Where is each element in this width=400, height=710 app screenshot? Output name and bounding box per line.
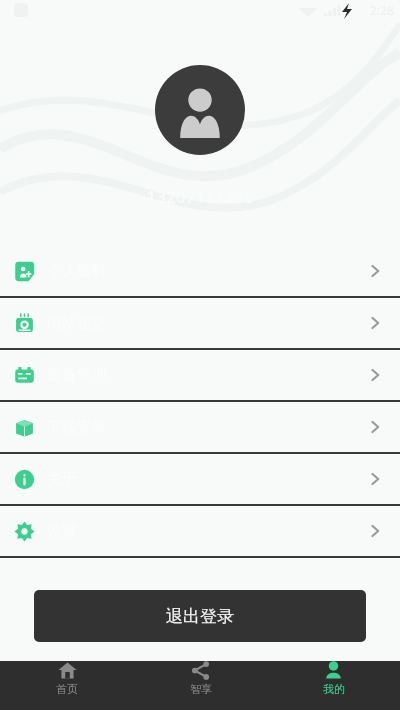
button[interactable]: 设置 xyxy=(0,506,400,556)
staticText: 我的 xyxy=(323,682,345,696)
staticText: 首页 xyxy=(56,682,78,696)
button[interactable]: 我的 xyxy=(267,661,400,696)
button[interactable]: 智享 xyxy=(134,661,267,696)
staticText: 智享 xyxy=(190,682,212,696)
button[interactable]: 设备管理 xyxy=(0,350,400,400)
button[interactable]: 电站信息 xyxy=(0,298,400,348)
staticText: 13207114336 xyxy=(0,185,400,208)
button[interactable]: 退出登录 xyxy=(34,590,366,642)
button[interactable]: 下载安装 xyxy=(0,402,400,452)
staticText: 2:28 xyxy=(370,2,394,18)
button[interactable]: 个人资料 xyxy=(0,246,400,296)
staticText: 退出登录 xyxy=(166,606,234,627)
button[interactable]: 首页 xyxy=(0,661,134,696)
button[interactable]: 关于 xyxy=(0,454,400,504)
